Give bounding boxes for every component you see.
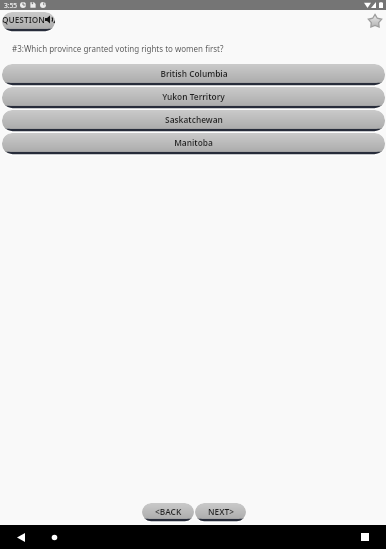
button[interactable]: NEXT> xyxy=(195,503,246,523)
staticText: Saskatchewan xyxy=(165,114,223,125)
staticText: Manitoba xyxy=(174,137,213,148)
staticText: 3:55 xyxy=(4,1,17,10)
button[interactable]: <BACK xyxy=(142,503,194,523)
button[interactable]: Favorite xyxy=(366,12,384,30)
button[interactable]: Saskatchewan xyxy=(2,110,385,133)
button[interactable]: British Columbia xyxy=(2,64,385,87)
button[interactable]: QUESTION xyxy=(2,12,55,33)
button[interactable]: Home xyxy=(50,533,59,542)
staticText: QUESTION xyxy=(2,14,45,25)
staticText: Yukon Territory xyxy=(162,91,225,102)
button[interactable]: Back xyxy=(17,533,25,542)
staticText: British Columbia xyxy=(160,68,228,79)
staticText: <BACK xyxy=(155,506,182,517)
staticText: NEXT> xyxy=(208,506,234,517)
staticText: #3:Which province granted voting rights … xyxy=(12,43,224,54)
button[interactable]: Yukon Territory xyxy=(2,87,385,110)
button[interactable]: Manitoba xyxy=(2,133,385,156)
